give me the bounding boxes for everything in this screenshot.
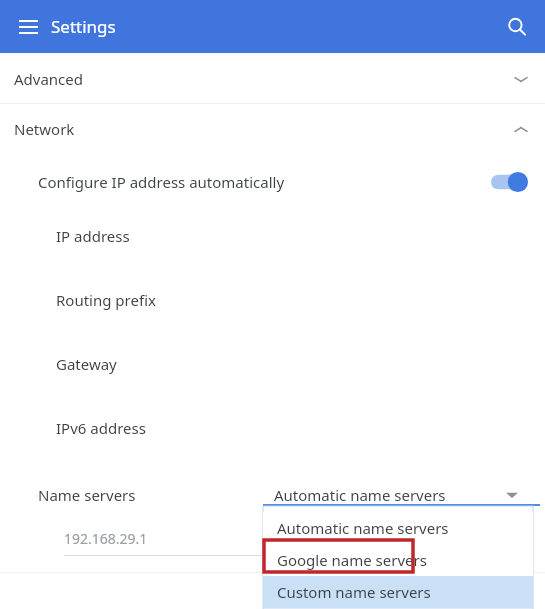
button[interactable]: IP address [0, 211, 545, 275]
button[interactable]: Advanced [0, 54, 545, 103]
button[interactable]: Gateway [0, 339, 545, 403]
button[interactable]: Configure IP address automatically toggl… [489, 171, 529, 193]
button[interactable]: Configure IP address automatically [0, 153, 545, 211]
button[interactable]: Network [0, 104, 545, 153]
staticText: Advanced [14, 69, 84, 89]
staticText: Automatic name servers [277, 518, 449, 538]
staticText: 192.168.29.1 [64, 529, 148, 548]
staticText: Automatic name servers [274, 485, 446, 505]
staticText: Google name servers [277, 550, 427, 570]
button[interactable]: Custom name servers [263, 576, 533, 608]
button[interactable]: Google name servers [263, 544, 533, 576]
button[interactable]: Search [499, 9, 535, 45]
button[interactable]: IPv6 address [0, 403, 545, 467]
other: Collapse [509, 117, 533, 141]
staticText: Routing prefix [56, 290, 156, 310]
staticText: Custom name servers [277, 582, 431, 602]
button[interactable]: Automatic name servers [263, 512, 533, 544]
staticText: Network [14, 119, 75, 139]
staticText: Configure IP address automatically [38, 172, 285, 192]
staticText: Name servers [38, 485, 136, 505]
other: Expand [509, 67, 533, 91]
staticText: IPv6 address [56, 418, 146, 438]
staticText: Gateway [56, 354, 117, 374]
staticText: IP address [56, 226, 130, 246]
button[interactable]: Automatic name servers [263, 475, 540, 515]
button[interactable]: Routing prefix [0, 275, 545, 339]
staticText: Settings [51, 15, 116, 38]
button[interactable]: Open navigation menu [10, 9, 46, 45]
